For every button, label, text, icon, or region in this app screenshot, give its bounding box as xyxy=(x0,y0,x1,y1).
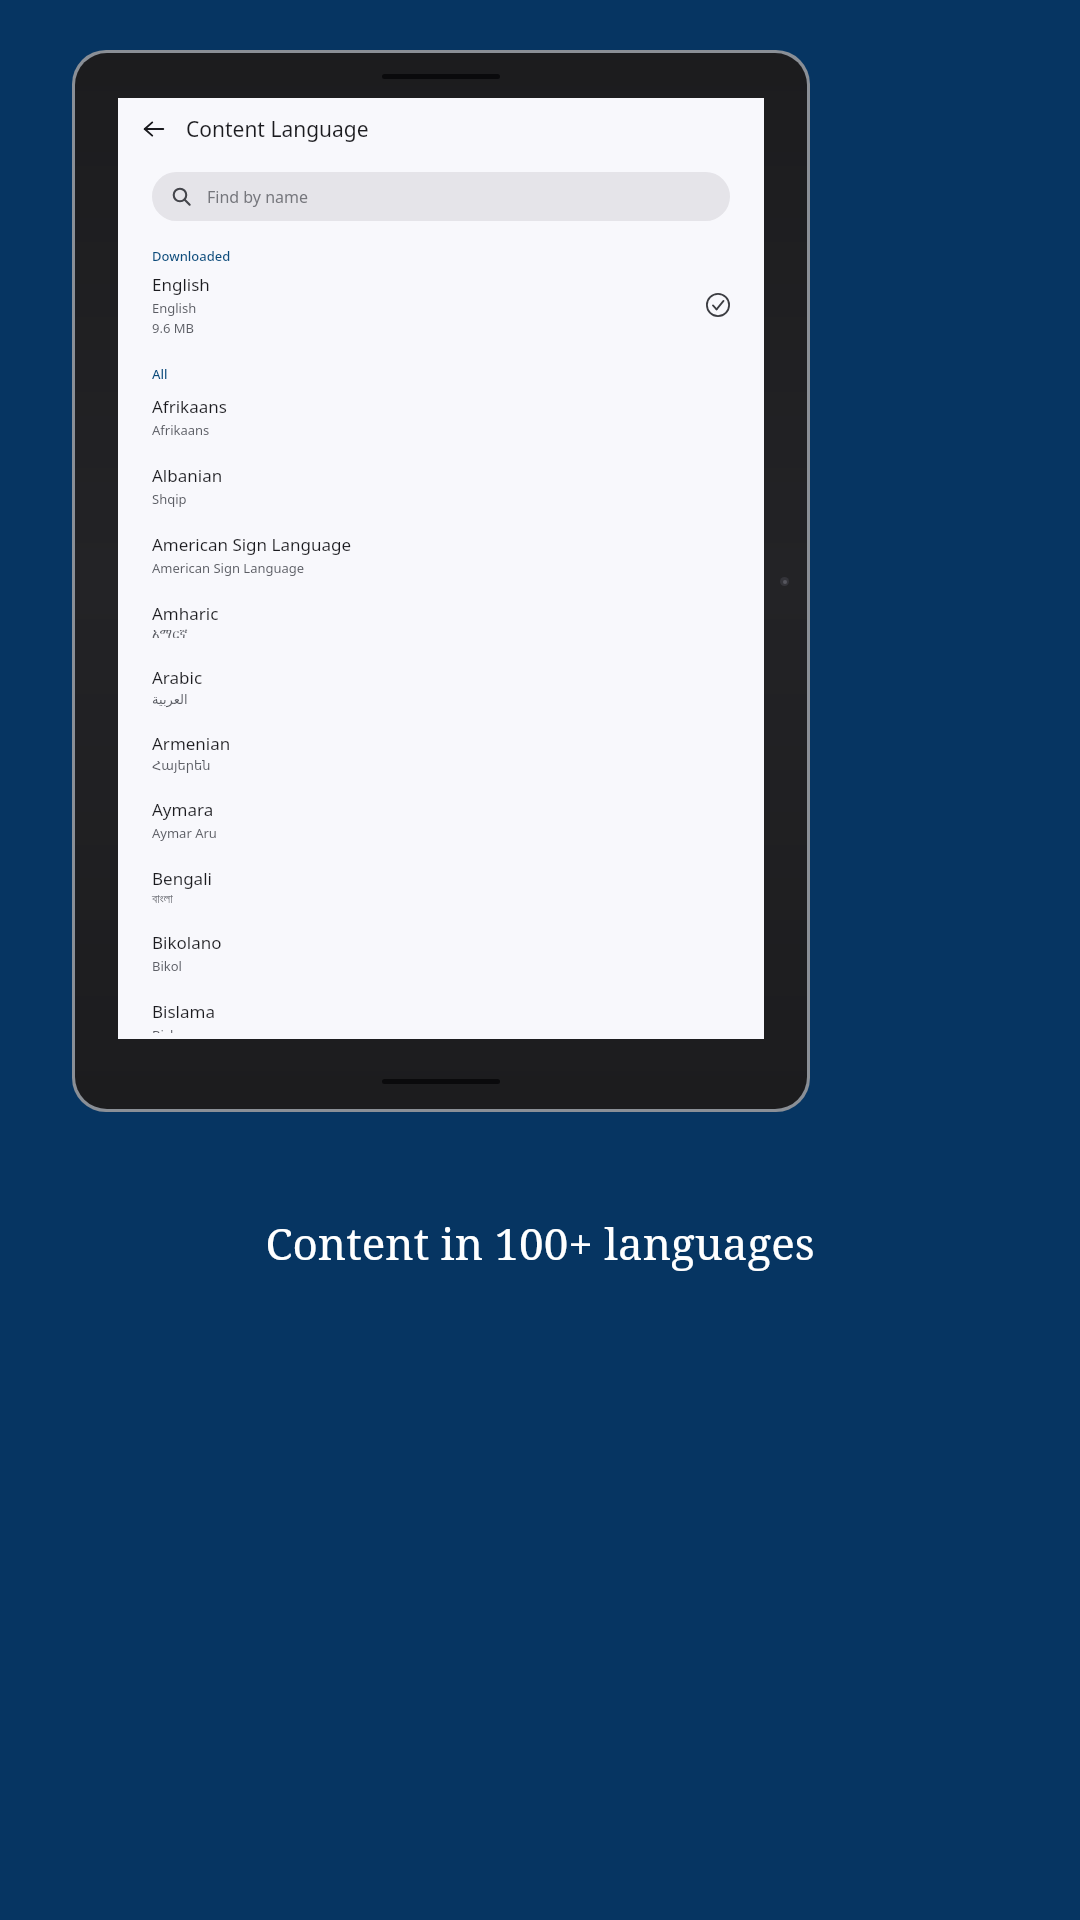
staticText: All xyxy=(152,365,168,383)
button[interactable]: Aymara xyxy=(118,792,764,848)
staticText: Aymara xyxy=(152,798,214,821)
staticText: Downloaded xyxy=(152,247,231,265)
staticText: Content in 100+ languages xyxy=(265,1213,815,1273)
staticText: Albanian xyxy=(152,464,223,487)
other: Selected xyxy=(706,293,730,317)
staticText: العربية xyxy=(152,692,188,707)
staticText: English xyxy=(152,273,210,296)
staticText: Հայերեն xyxy=(152,758,211,773)
button[interactable]: American Sign Language xyxy=(118,527,764,583)
staticText: Content Language xyxy=(186,115,369,144)
staticText: Bengali xyxy=(152,867,212,890)
staticText: Bikolano xyxy=(152,931,222,954)
button[interactable]: Amharic xyxy=(118,596,764,647)
staticText: বাংলা xyxy=(152,893,173,906)
staticText: Find by name xyxy=(207,186,309,208)
button[interactable]: Afrikaans xyxy=(118,389,764,445)
staticText: Arabic xyxy=(152,666,203,689)
staticText: Bislama xyxy=(152,1026,201,1033)
staticText: American Sign Language xyxy=(152,559,305,577)
button[interactable]: Back xyxy=(134,109,174,149)
button[interactable]: Bikolano xyxy=(118,925,764,981)
staticText: Bikol xyxy=(152,957,182,975)
staticText: Afrikaans xyxy=(152,395,227,418)
button[interactable]: Find by name xyxy=(152,172,730,221)
staticText: Aymar Aru xyxy=(152,824,217,842)
staticText: አማርኛ xyxy=(152,628,188,641)
staticText: English xyxy=(152,299,197,317)
staticText: 9.6 MB xyxy=(152,319,194,337)
staticText: Armenian xyxy=(152,732,231,755)
staticText: Afrikaans xyxy=(152,421,210,439)
staticText: Amharic xyxy=(152,602,219,625)
button[interactable]: Arabic xyxy=(118,660,764,713)
button[interactable]: English xyxy=(118,265,764,343)
staticText: American Sign Language xyxy=(152,533,351,556)
button[interactable]: Bengali xyxy=(118,861,764,912)
button[interactable]: Albanian xyxy=(118,458,764,514)
staticText: Bislama xyxy=(152,1000,215,1023)
button[interactable]: Armenian xyxy=(118,726,764,779)
staticText: Shqip xyxy=(152,490,187,508)
button[interactable]: Bislama xyxy=(118,994,764,1039)
